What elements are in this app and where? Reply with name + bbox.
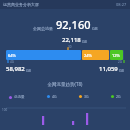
button[interactable]: 22,118: [62, 36, 87, 44]
staticText: 64%: [8, 53, 16, 58]
staticText: 08:27: [116, 2, 127, 7]
staticText: GB: [119, 68, 124, 73]
button[interactable]: 24%: [82, 50, 109, 60]
button[interactable]: 4G: [46, 93, 58, 100]
staticText: GB: [92, 26, 98, 31]
button[interactable]: 运营商业务分析大屏: [0, 0, 130, 9]
button[interactable]: 64%: [6, 50, 81, 60]
staticText: 11,059: [99, 65, 118, 73]
staticText: 总流量: [14, 95, 25, 99]
staticText: GB: [26, 68, 31, 73]
button[interactable]: 58,982: [6, 65, 31, 73]
staticText: GB: [82, 39, 87, 44]
staticText: 3G: [84, 94, 89, 99]
staticText: 58,982: [6, 65, 25, 73]
staticText: 4G: [10, 60, 14, 64]
staticText: 22,118: [62, 36, 81, 44]
button[interactable]: 12%: [110, 50, 123, 60]
staticText: 12%: [112, 53, 120, 58]
button[interactable]: 全网总流量: [0, 17, 130, 32]
staticText: 全网流量趋势(T8): [0, 81, 130, 87]
staticText: 4G: [52, 94, 57, 99]
button[interactable]: 64%: [6, 50, 124, 60]
staticText: 2G: [116, 94, 121, 99]
staticText: 24%: [84, 53, 92, 58]
button[interactable]: 2G: [110, 93, 122, 100]
button[interactable]: 3G: [78, 93, 90, 100]
button[interactable]: 总流量: [8, 94, 26, 100]
button[interactable]: 11,059: [99, 65, 124, 73]
staticText: 92,160: [56, 17, 91, 32]
staticText: 全网总流量: [33, 26, 53, 31]
staticText: 30: [68, 45, 72, 49]
staticText: 2G: [118, 60, 122, 64]
staticText: 运营商业务分析大屏: [3, 2, 39, 7]
staticText: 100: [2, 108, 8, 112]
